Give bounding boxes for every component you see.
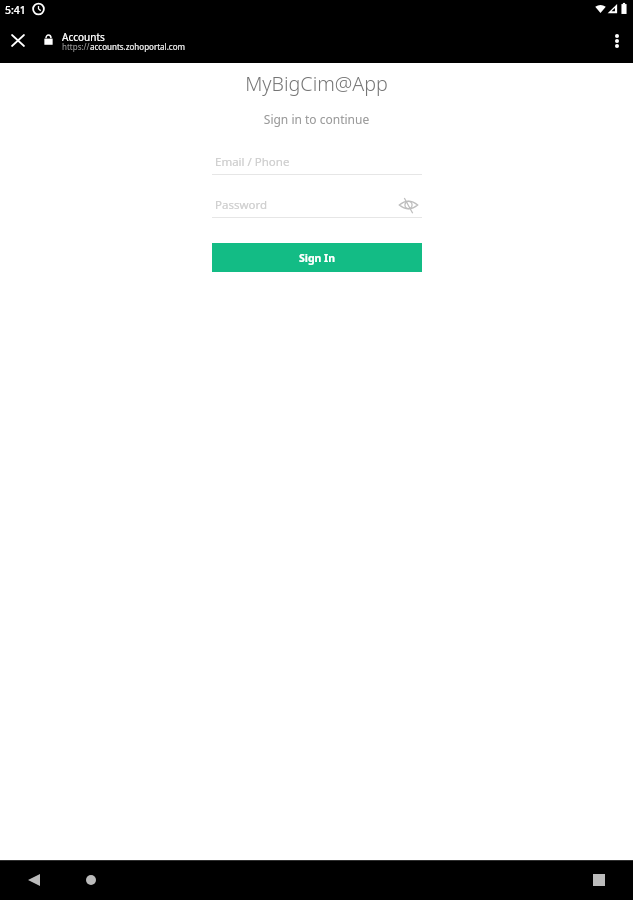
button[interactable]: Show password — [397, 193, 420, 216]
staticText: Password — [215, 197, 268, 213]
staticText: Sign In — [299, 251, 336, 265]
button[interactable]: Close — [0, 22, 35, 63]
staticText: accounts.zohoportal.com — [90, 41, 185, 52]
staticText: https:// — [62, 41, 90, 52]
staticText: Sign in to continue — [0, 111, 633, 127]
button[interactable]: Home — [77, 866, 105, 894]
staticText: Email / Phone — [215, 154, 290, 170]
button[interactable]: Sign In — [212, 243, 422, 272]
staticText: MyBigCim@App — [0, 70, 633, 97]
button[interactable]: Recent apps — [585, 866, 613, 894]
button[interactable]: More options — [600, 22, 633, 63]
button[interactable]: Back — [20, 866, 48, 894]
staticText: Accounts — [62, 30, 105, 44]
staticText: 5:41 — [5, 3, 26, 17]
